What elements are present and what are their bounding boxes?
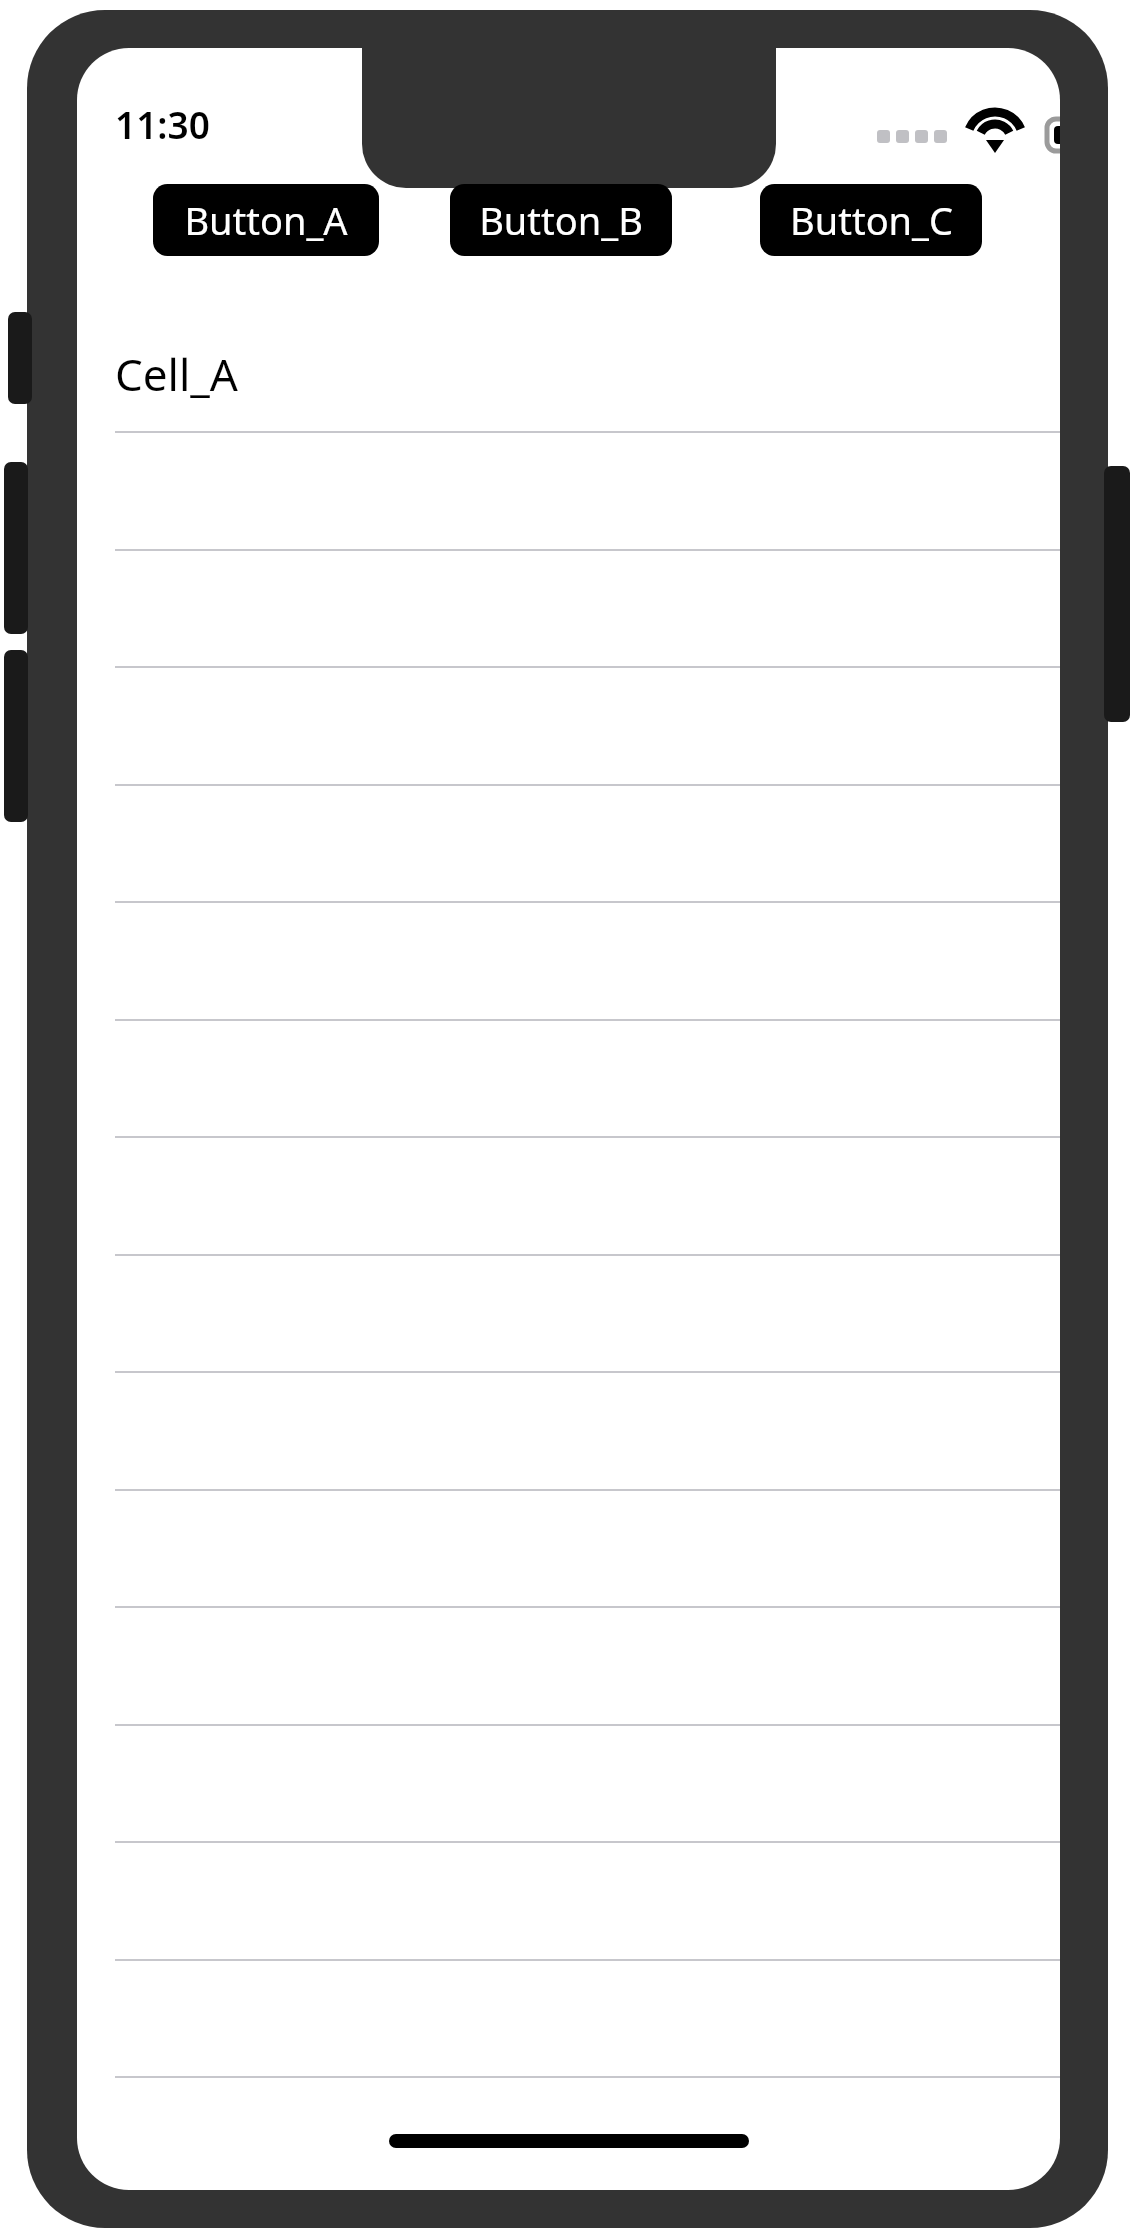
button[interactable]: [115, 666, 1060, 784]
button[interactable]: [115, 1254, 1060, 1372]
button[interactable]: [115, 2076, 1060, 2190]
button[interactable]: [115, 901, 1060, 1019]
button[interactable]: Button_A: [153, 184, 379, 256]
button[interactable]: [115, 1019, 1060, 1137]
button[interactable]: [115, 1489, 1060, 1607]
staticText: Button_C: [790, 194, 953, 246]
staticText: 11:30: [115, 99, 210, 149]
button[interactable]: [115, 1724, 1060, 1842]
button[interactable]: [115, 1959, 1060, 2077]
other: Home indicator: [389, 2134, 749, 2148]
staticText: Button_A: [184, 194, 348, 246]
button[interactable]: Button_B: [450, 184, 672, 256]
staticText: Button_B: [479, 194, 643, 246]
button[interactable]: Button_C: [760, 184, 982, 256]
button[interactable]: [115, 1371, 1060, 1489]
button[interactable]: [115, 1841, 1060, 1959]
button[interactable]: [115, 1606, 1060, 1724]
button[interactable]: [115, 1136, 1060, 1254]
button[interactable]: [115, 549, 1060, 667]
button[interactable]: [115, 431, 1060, 549]
staticText: Cell_A: [115, 344, 238, 404]
button[interactable]: [115, 784, 1060, 902]
button[interactable]: Cell_A: [115, 316, 515, 431]
